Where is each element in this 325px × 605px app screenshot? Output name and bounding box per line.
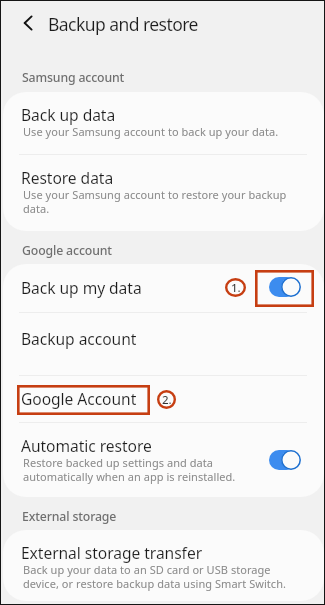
staticText: 1. bbox=[231, 280, 241, 296]
staticText: Google Account bbox=[21, 388, 137, 409]
button[interactable]: Google Account bbox=[3, 376, 324, 422]
staticText: Restore backed up settings and data auto… bbox=[23, 456, 261, 484]
staticText: Use your Samsung account to back up your… bbox=[23, 125, 308, 139]
staticText: External storage transfer bbox=[21, 542, 203, 563]
staticText: Backup and restore bbox=[48, 12, 198, 36]
staticText: 2. bbox=[162, 392, 172, 408]
staticText: Backup account bbox=[21, 328, 137, 349]
button[interactable]: Backup account bbox=[3, 313, 324, 375]
staticText: Google account bbox=[22, 242, 112, 259]
staticText: Back up my data bbox=[21, 277, 142, 298]
staticText: Automatic restore bbox=[21, 435, 152, 456]
button[interactable]: Toggle on bbox=[269, 277, 301, 297]
button[interactable]: Back up data bbox=[3, 92, 324, 154]
button[interactable]: Back bbox=[10, 5, 46, 41]
button[interactable]: Automatic restore bbox=[3, 423, 324, 497]
staticText: Back up data bbox=[21, 104, 116, 125]
button[interactable]: External storage transfer bbox=[3, 530, 324, 601]
staticText: External storage bbox=[22, 508, 117, 525]
staticText: Back up your data to an SD card or USB s… bbox=[23, 563, 299, 591]
staticText: Use your Samsung account to restore your… bbox=[23, 188, 299, 216]
staticText: Samsung account bbox=[22, 69, 125, 86]
button[interactable]: Toggle on bbox=[269, 450, 301, 470]
staticText: Restore data bbox=[21, 167, 114, 188]
button[interactable]: Restore data bbox=[3, 155, 324, 230]
button[interactable]: Back up my data bbox=[3, 264, 324, 312]
